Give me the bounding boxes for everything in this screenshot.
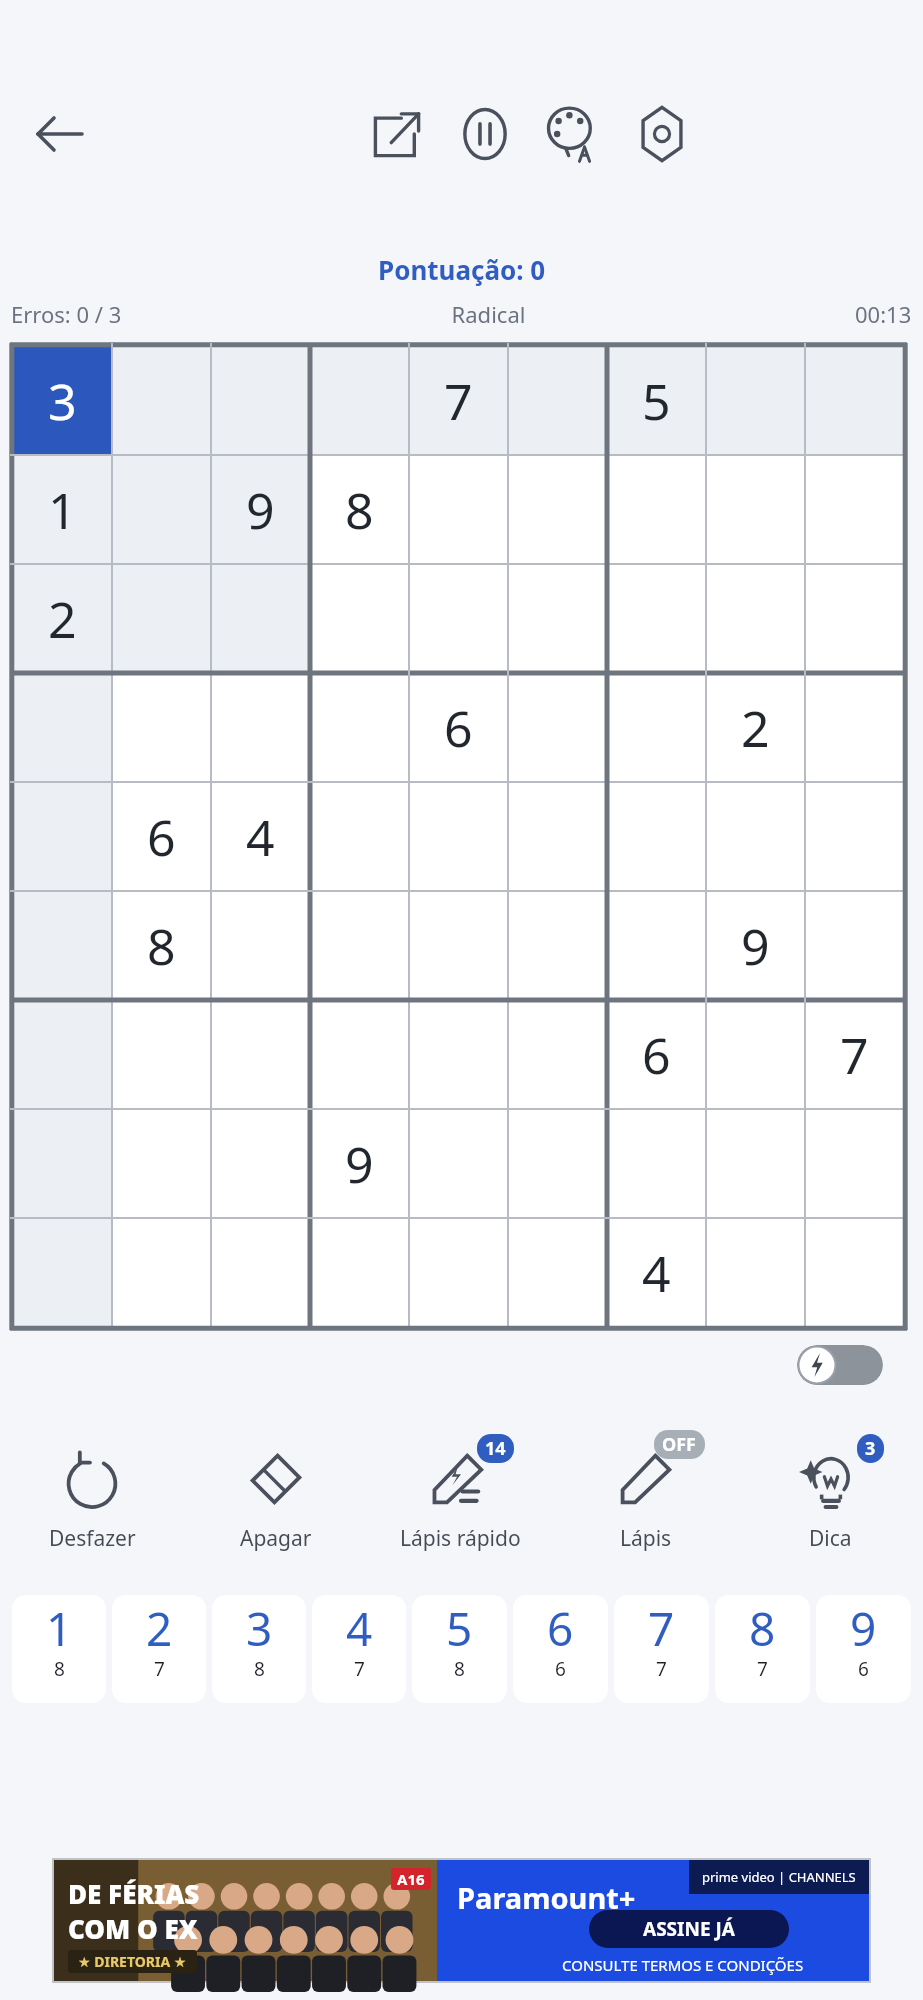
button[interactable] (805, 564, 904, 673)
button[interactable] (310, 564, 409, 673)
button[interactable] (805, 1109, 904, 1218)
button[interactable]: 5 (412, 1595, 507, 1703)
button[interactable] (706, 346, 805, 455)
button[interactable] (112, 1000, 211, 1109)
button[interactable] (409, 891, 508, 1000)
button[interactable] (607, 891, 706, 1000)
button[interactable] (409, 1000, 508, 1109)
button[interactable] (211, 1000, 310, 1109)
button[interactable]: 7 (409, 346, 508, 455)
button[interactable]: 1 (12, 1595, 106, 1703)
button[interactable]: OFF (553, 1440, 738, 1553)
button[interactable] (13, 1218, 112, 1327)
button[interactable] (508, 346, 607, 455)
button[interactable] (409, 455, 508, 564)
button[interactable]: Auto lightning toggle (797, 1345, 883, 1385)
button[interactable] (13, 1000, 112, 1109)
button[interactable] (310, 891, 409, 1000)
button[interactable]: 7 (614, 1595, 709, 1703)
button[interactable]: 14 (368, 1440, 553, 1553)
button[interactable] (805, 782, 904, 891)
button[interactable]: 2 (13, 564, 112, 673)
button[interactable] (508, 891, 607, 1000)
button[interactable] (409, 1109, 508, 1218)
button[interactable] (508, 782, 607, 891)
button[interactable] (607, 455, 706, 564)
button[interactable] (805, 346, 904, 455)
button[interactable] (211, 1218, 310, 1327)
button[interactable] (607, 564, 706, 673)
button[interactable] (310, 673, 409, 782)
button[interactable] (112, 346, 211, 455)
button[interactable] (805, 1218, 904, 1327)
button[interactable]: 9 (211, 455, 310, 564)
button[interactable] (310, 1000, 409, 1109)
button[interactable]: 9 (706, 891, 805, 1000)
button[interactable]: 8 (715, 1595, 810, 1703)
button[interactable] (112, 564, 211, 673)
button[interactable]: DE FÉRIAS (54, 1860, 869, 1981)
button[interactable] (805, 455, 904, 564)
button[interactable] (310, 1218, 409, 1327)
button[interactable]: 1 (13, 455, 112, 564)
button[interactable]: 3 (13, 346, 112, 455)
button[interactable]: 2 (706, 673, 805, 782)
button[interactable] (211, 891, 310, 1000)
button[interactable] (706, 564, 805, 673)
button[interactable] (706, 1000, 805, 1109)
button[interactable]: Desfazer (0, 1440, 184, 1553)
button[interactable]: 8 (310, 455, 409, 564)
button[interactable] (706, 782, 805, 891)
button[interactable] (706, 455, 805, 564)
button[interactable] (13, 1109, 112, 1218)
button[interactable]: 3 (738, 1440, 923, 1553)
button[interactable]: 9 (310, 1109, 409, 1218)
button[interactable] (508, 1109, 607, 1218)
button[interactable]: 6 (513, 1595, 608, 1703)
button[interactable] (13, 673, 112, 782)
button[interactable] (508, 564, 607, 673)
button[interactable]: 6 (607, 1000, 706, 1109)
button[interactable] (112, 455, 211, 564)
button[interactable] (13, 891, 112, 1000)
button[interactable] (607, 782, 706, 891)
button[interactable] (310, 782, 409, 891)
button[interactable]: Share (361, 98, 433, 170)
button[interactable]: 4 (312, 1595, 406, 1703)
button[interactable] (508, 455, 607, 564)
button[interactable]: 2 (112, 1595, 206, 1703)
button[interactable]: Apagar (184, 1440, 368, 1553)
button[interactable]: Theme (537, 98, 609, 170)
button[interactable] (112, 1109, 211, 1218)
button[interactable] (211, 346, 310, 455)
button[interactable] (310, 346, 409, 455)
button[interactable]: Back (24, 98, 96, 170)
button[interactable]: Settings (626, 98, 698, 170)
button[interactable]: 6 (112, 782, 211, 891)
button[interactable] (13, 782, 112, 891)
button[interactable]: 5 (607, 346, 706, 455)
button[interactable]: Pause (449, 98, 521, 170)
button[interactable] (409, 782, 508, 891)
button[interactable]: 4 (607, 1218, 706, 1327)
button[interactable] (508, 673, 607, 782)
button[interactable] (409, 564, 508, 673)
button[interactable]: 6 (409, 673, 508, 782)
button[interactable] (211, 564, 310, 673)
button[interactable]: 3 (212, 1595, 306, 1703)
button[interactable] (706, 1218, 805, 1327)
button[interactable] (607, 673, 706, 782)
button[interactable] (508, 1000, 607, 1109)
button[interactable]: 8 (112, 891, 211, 1000)
button[interactable]: 4 (211, 782, 310, 891)
button[interactable] (607, 1109, 706, 1218)
button[interactable]: 7 (805, 1000, 904, 1109)
button[interactable] (112, 673, 211, 782)
button[interactable]: 9 (816, 1595, 911, 1703)
button[interactable] (211, 673, 310, 782)
button[interactable] (112, 1218, 211, 1327)
button[interactable] (805, 673, 904, 782)
button[interactable] (805, 891, 904, 1000)
button[interactable] (706, 1109, 805, 1218)
button[interactable] (211, 1109, 310, 1218)
